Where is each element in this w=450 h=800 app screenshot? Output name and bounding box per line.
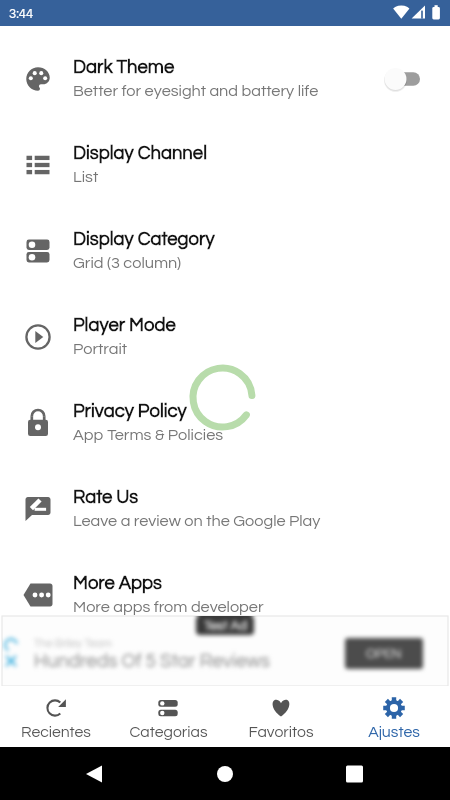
staticText: Privacy Policy — [73, 402, 187, 421]
staticText: Ajustes — [368, 724, 420, 740]
staticText: More apps from developer — [73, 599, 264, 616]
staticText: OPEN — [366, 647, 402, 660]
button[interactable]: Toggle dark theme — [378, 36, 450, 122]
staticText: Portrait — [73, 341, 128, 358]
staticText: Hundreds Of 5 Star Reviews — [34, 651, 270, 671]
staticText: Display Category — [73, 230, 215, 249]
staticText: Test Ad — [204, 619, 247, 632]
staticText: Rate Us — [73, 488, 139, 507]
button[interactable]: Player Mode — [0, 294, 450, 380]
button[interactable]: OPEN — [345, 638, 423, 669]
staticText: Player Mode — [73, 316, 176, 335]
staticText: Grid (3 column) — [73, 255, 182, 272]
button[interactable]: Display Channel — [0, 122, 450, 208]
staticText: 3:44 — [9, 7, 34, 20]
staticText: Favoritos — [248, 724, 314, 740]
staticText: App Terms & Policies — [73, 427, 224, 444]
button[interactable]: More Apps — [0, 552, 450, 638]
staticText: Better for eyesight and battery life — [73, 83, 319, 100]
button[interactable]: Categorias — [112, 686, 224, 747]
button[interactable]: Dark Theme — [0, 36, 450, 122]
staticText: Dark Theme — [73, 58, 175, 77]
staticText: Leave a review on the Google Play — [73, 513, 321, 530]
staticText: Categorias — [129, 724, 208, 740]
staticText: More Apps — [73, 574, 162, 593]
staticText: List — [73, 169, 99, 186]
button[interactable]: Recientes — [0, 686, 112, 747]
button[interactable]: Favoritos — [224, 686, 337, 747]
staticText: Recientes — [21, 724, 91, 740]
staticText: The Briley Team — [34, 638, 112, 649]
staticText: Display Channel — [73, 144, 207, 163]
button[interactable]: Display Category — [0, 208, 450, 294]
button[interactable]: Privacy Policy — [0, 380, 450, 466]
button[interactable]: Ajustes — [337, 686, 450, 747]
button[interactable]: Rate Us — [0, 466, 450, 552]
